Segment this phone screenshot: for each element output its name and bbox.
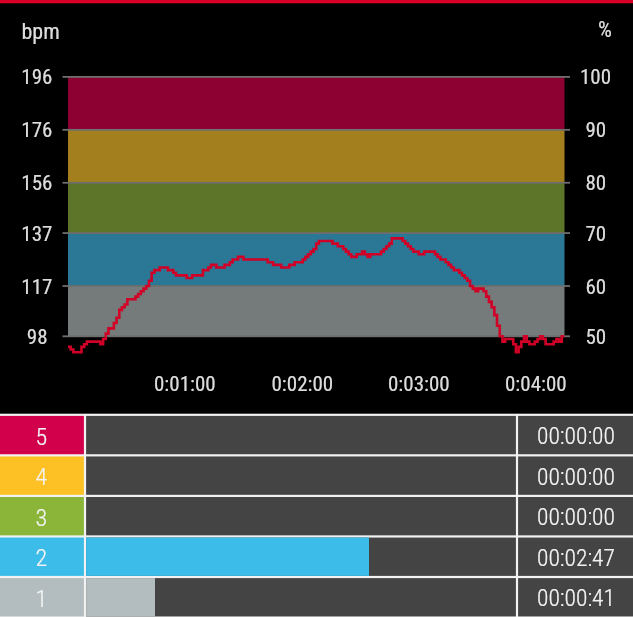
button[interactable]: Heart rate zone chart [0,0,633,617]
